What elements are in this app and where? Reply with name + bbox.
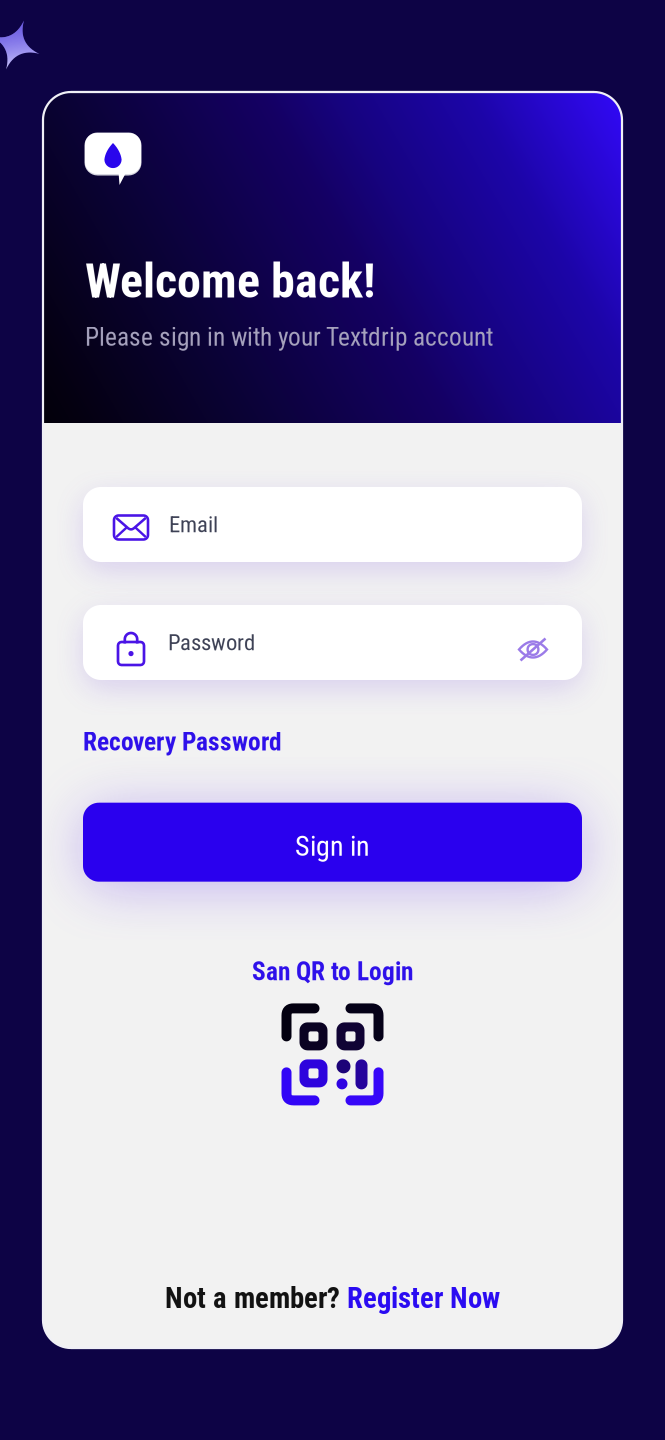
button[interactable]: Email <box>83 487 582 562</box>
staticText: Register Now <box>347 1281 500 1315</box>
button[interactable]: Recovery Password <box>83 727 282 757</box>
staticText: Welcome back! <box>85 253 376 309</box>
staticText: Recovery Password <box>83 727 282 757</box>
button[interactable]: San QR to Login <box>252 882 413 986</box>
staticText: San QR to Login <box>252 957 413 986</box>
staticText: Not a member? <box>165 1281 347 1315</box>
button[interactable]: Scan QR code to log in <box>281 986 383 1105</box>
staticText: Password <box>168 629 255 656</box>
button[interactable]: Show password <box>517 628 582 657</box>
button[interactable]: Sign in <box>83 803 582 882</box>
button[interactable]: Register Now <box>347 1281 500 1315</box>
staticText: Email <box>169 511 218 538</box>
staticText: Sign in <box>295 830 370 863</box>
staticText: Please sign in with your Textdrip accoun… <box>85 322 493 352</box>
